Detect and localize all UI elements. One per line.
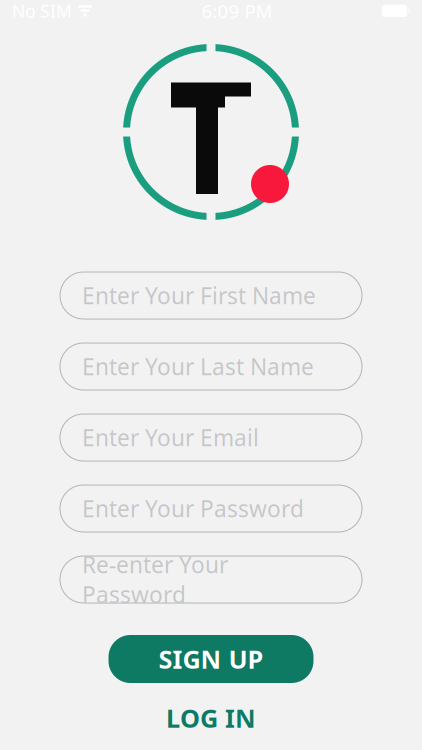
button[interactable]: Enter Your Email <box>60 414 362 461</box>
staticText: SIGN UP <box>158 642 263 676</box>
staticText: Enter Your Password <box>82 493 304 523</box>
staticText: 6:09 PM <box>201 0 272 23</box>
staticText: No SIM <box>12 0 72 22</box>
button[interactable]: SIGN UP <box>108 635 313 683</box>
staticText: LOG IN <box>166 701 256 735</box>
staticText: Re-enter Your Password <box>82 549 228 610</box>
button[interactable]: Enter Your Password <box>60 485 362 532</box>
button[interactable]: LOG IN <box>108 701 313 735</box>
staticText: Enter Your First Name <box>82 280 316 310</box>
staticText: Enter Your Email <box>82 422 259 452</box>
button[interactable]: Enter Your Last Name <box>60 343 362 390</box>
button[interactable]: Re-enter Your Password <box>60 556 362 603</box>
staticText: Enter Your Last Name <box>82 351 314 381</box>
button[interactable]: Enter Your First Name <box>60 272 362 319</box>
